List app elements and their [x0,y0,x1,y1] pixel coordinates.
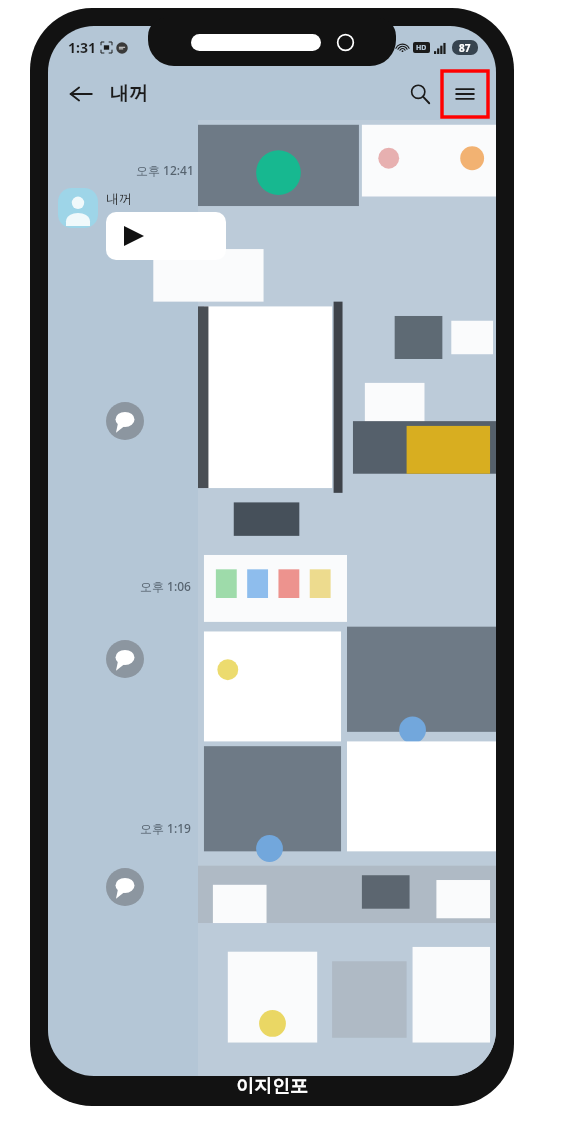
staticText: 오후 1:06 [140,578,191,594]
staticText: 내꺼 [106,190,132,206]
staticText: 오후 12:41 [136,162,194,178]
button[interactable]: Search [400,74,440,114]
button[interactable]: Back [62,75,148,113]
button[interactable]: Play video [106,212,226,260]
staticText: 87 [459,41,471,55]
staticText: HD [416,43,427,53]
staticText: 이지인포 [236,1075,308,1098]
staticText: 1:31 [68,38,96,57]
staticText: 내꺼 [110,82,148,106]
other: Back [62,75,100,113]
staticText: 오후 1:19 [140,820,191,836]
button[interactable]: Menu [442,71,488,117]
